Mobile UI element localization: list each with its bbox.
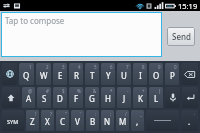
staticText: M <box>119 116 127 127</box>
staticText: ( <box>159 88 161 94</box>
staticText: ' <box>80 111 82 117</box>
staticText: R <box>74 70 79 81</box>
staticText: + <box>142 88 145 94</box>
staticText: Send <box>172 31 191 42</box>
staticText: ! <box>35 111 37 117</box>
staticText: C <box>60 116 66 127</box>
button[interactable]: 3 <box>53 63 67 85</box>
staticText: Z <box>30 116 35 127</box>
staticText: T <box>90 70 95 81</box>
staticText: X <box>45 116 50 127</box>
staticText: - <box>127 88 129 94</box>
button[interactable]: Backspace <box>181 63 198 85</box>
staticText: Y <box>106 70 111 81</box>
staticText: 15:19 <box>178 1 198 11</box>
staticText: Q <box>23 70 30 81</box>
staticText: S <box>42 93 47 104</box>
button[interactable]: Language <box>2 63 17 85</box>
staticText: L <box>154 93 159 104</box>
staticText: I <box>139 70 142 81</box>
button[interactable]: * <box>101 87 115 108</box>
staticText: 1 <box>29 64 32 70</box>
staticText: G <box>89 93 95 104</box>
staticText: 7 <box>126 64 129 70</box>
staticText: : <box>95 111 97 117</box>
staticText: O <box>153 70 160 81</box>
staticText: $ <box>62 88 65 94</box>
button[interactable]: @ <box>22 87 35 108</box>
staticText: # <box>46 88 49 94</box>
button[interactable]: · <box>181 110 198 131</box>
button[interactable]: ' <box>71 110 84 131</box>
staticText: @ <box>28 88 33 94</box>
staticText: 9 <box>158 64 161 70</box>
staticText: W <box>40 70 48 81</box>
button[interactable]: & <box>85 87 99 108</box>
button[interactable]: ! <box>26 110 39 131</box>
staticText: % <box>77 88 81 94</box>
button[interactable]: Enter <box>182 87 198 108</box>
button[interactable]: Shift <box>2 87 20 108</box>
staticText: K <box>138 93 143 104</box>
button[interactable]: ; <box>101 110 114 131</box>
staticText: H <box>105 93 111 104</box>
staticText: & <box>93 88 97 94</box>
staticText: P <box>170 70 175 81</box>
staticText: 5 <box>94 64 97 70</box>
button[interactable]: 0 <box>165 63 179 85</box>
button[interactable]: Space <box>146 110 179 131</box>
staticText: F <box>74 93 79 104</box>
button[interactable]: # <box>37 87 51 108</box>
staticText: / <box>125 111 127 117</box>
staticText: 2 <box>46 64 49 70</box>
staticText: , <box>136 116 139 127</box>
staticText: 8 <box>142 64 145 70</box>
button[interactable]: 2 <box>36 63 51 85</box>
button[interactable]: / <box>116 110 129 131</box>
staticText: · <box>194 111 196 117</box>
staticText: SYM <box>7 118 19 125</box>
staticText: N <box>104 116 111 127</box>
button[interactable]: _ <box>131 110 144 131</box>
button[interactable]: - <box>117 87 131 108</box>
staticText: 0 <box>174 64 177 70</box>
button[interactable]: ? <box>41 110 54 131</box>
staticText: . <box>188 116 191 127</box>
button[interactable]: Voice input <box>165 87 180 108</box>
button[interactable]: 8 <box>133 63 147 85</box>
staticText: _ <box>140 111 142 117</box>
staticText: A <box>26 93 32 104</box>
staticText: D <box>57 93 63 104</box>
staticText: J <box>123 93 126 104</box>
button[interactable]: " <box>56 110 69 131</box>
staticText: * <box>110 88 113 94</box>
button[interactable]: : <box>86 110 99 131</box>
button[interactable]: SYM <box>2 110 24 131</box>
button[interactable]: $ <box>53 87 67 108</box>
staticText: E <box>58 70 63 81</box>
button[interactable]: + <box>133 87 147 108</box>
staticText: 6 <box>110 64 113 70</box>
staticText: " <box>65 111 67 117</box>
button[interactable]: 7 <box>117 63 131 85</box>
button[interactable]: % <box>69 87 83 108</box>
staticText: Tap to compose <box>5 15 65 26</box>
staticText: 3 <box>62 64 65 70</box>
staticText: B <box>90 116 96 127</box>
button[interactable]: 4 <box>69 63 83 85</box>
button[interactable]: 1 <box>19 63 34 85</box>
button[interactable]: Tap to compose <box>1 12 162 57</box>
button[interactable]: ( <box>149 87 163 108</box>
button[interactable]: 5 <box>85 63 99 85</box>
button[interactable]: 6 <box>101 63 115 85</box>
staticText: 4 <box>78 64 81 70</box>
staticText: ; <box>110 111 112 117</box>
button[interactable]: Send <box>167 27 195 46</box>
staticText: V <box>75 116 80 127</box>
staticText: ? <box>50 111 52 117</box>
button[interactable]: 9 <box>149 63 163 85</box>
staticText: U <box>121 70 127 81</box>
